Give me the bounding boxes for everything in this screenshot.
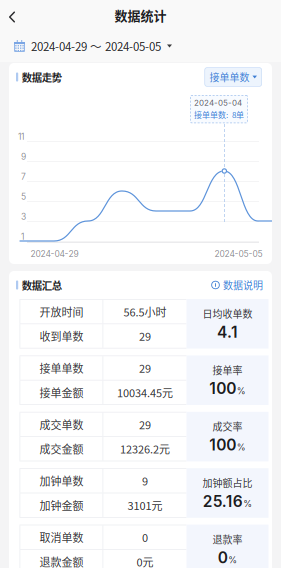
staticText: 29 xyxy=(139,416,151,432)
staticText: 加钟单数 xyxy=(39,473,83,489)
staticText: 29 xyxy=(139,360,151,376)
staticText: 成交单数 xyxy=(39,416,83,432)
staticText: 退款金额 xyxy=(39,554,83,568)
staticText: 日均收单数 xyxy=(202,306,252,321)
staticText: 3 xyxy=(21,211,26,222)
staticText: % xyxy=(243,498,252,509)
staticText: 数据走势 xyxy=(22,69,62,85)
staticText: 接单单数 xyxy=(209,70,249,84)
staticText: 9 xyxy=(21,151,26,162)
staticText: 5 xyxy=(21,191,26,202)
staticText: 接单率 xyxy=(212,363,242,377)
button[interactable]: 接单单数 xyxy=(204,67,262,87)
staticText: 29 xyxy=(139,328,151,344)
staticText: % xyxy=(237,385,246,396)
button[interactable]: 数据说明 xyxy=(211,278,263,292)
staticText: 25.16 xyxy=(203,492,243,511)
staticText: 10034.45元 xyxy=(117,384,173,400)
staticText: 开放时间 xyxy=(39,304,83,319)
staticText: 2024-04-29 xyxy=(30,249,78,259)
staticText: 接单单数: 8单 xyxy=(194,109,244,120)
staticText: 0元 xyxy=(136,554,153,568)
staticText: 100 xyxy=(209,379,236,398)
staticText: 退款率 xyxy=(212,532,242,546)
staticText: 数据统计 xyxy=(114,6,166,24)
staticText: 100 xyxy=(209,435,236,454)
staticText: 1 xyxy=(21,231,24,242)
staticText: 7 xyxy=(21,171,26,182)
staticText: 接单金额 xyxy=(39,384,83,400)
staticText: % xyxy=(237,442,246,453)
staticText: 加钟额占比 xyxy=(202,475,252,490)
staticText: 成交金额 xyxy=(39,441,83,457)
staticText: 0 xyxy=(218,548,228,567)
staticText: 取消单数 xyxy=(39,529,83,545)
button[interactable]: Back xyxy=(0,0,28,30)
staticText: 0 xyxy=(142,529,148,545)
staticText: 加钟金额 xyxy=(39,497,83,513)
staticText: 9 xyxy=(142,473,148,489)
staticText: 12326.2元 xyxy=(120,441,170,457)
staticText: 2024-05-04 xyxy=(194,98,242,108)
staticText: 2024-04-29 ～ 2024-05-05 xyxy=(31,38,161,54)
staticText: 成交率 xyxy=(212,419,242,433)
staticText: 接单单数 xyxy=(39,360,83,376)
staticText: 4.1 xyxy=(217,323,238,341)
staticText: 11 xyxy=(18,131,24,142)
staticText: 2024-05-05 xyxy=(214,249,262,259)
button[interactable]: 2024-04-29 ～ 2024-05-05 xyxy=(0,30,281,62)
staticText: % xyxy=(228,555,237,565)
staticText: 收到单数 xyxy=(39,328,83,344)
staticText: 3101元 xyxy=(127,497,162,513)
staticText: 数据说明 xyxy=(223,278,263,292)
staticText: 数据汇总 xyxy=(22,277,62,293)
staticText: 56.5小时 xyxy=(123,304,166,319)
